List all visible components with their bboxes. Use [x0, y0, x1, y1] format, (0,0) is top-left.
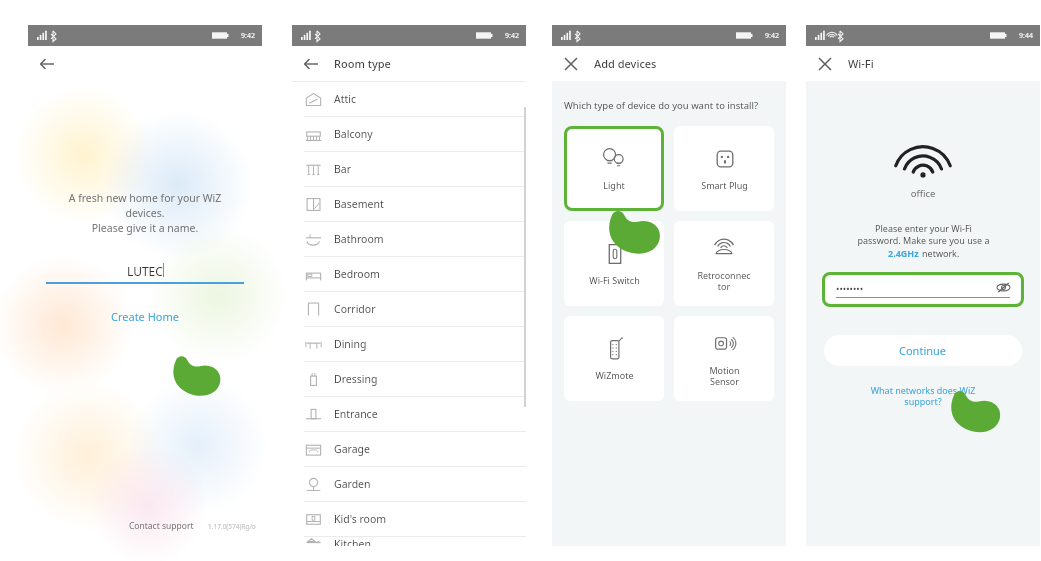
- button[interactable]: Create Home: [101, 306, 189, 327]
- staticText: Entrance: [334, 407, 378, 421]
- button[interactable]: Bathroom: [292, 222, 526, 256]
- staticText: Room type: [334, 56, 391, 71]
- staticText: Kid's room: [334, 512, 387, 526]
- button[interactable]: Light: [567, 129, 661, 208]
- staticText: Kitchen: [334, 537, 371, 546]
- staticText: LUTEC: [127, 263, 163, 279]
- button[interactable]: Kid's room: [292, 502, 526, 536]
- staticText: 9:44: [1019, 31, 1033, 41]
- staticText: Balcony: [334, 127, 373, 141]
- button[interactable]: Bar: [292, 152, 526, 186]
- staticText: Continue: [899, 343, 947, 358]
- button[interactable]: Bedroom: [292, 257, 526, 291]
- staticText: Wi-Fi: [848, 56, 874, 71]
- staticText: Dressing: [334, 372, 378, 386]
- staticText: 9:42: [241, 31, 255, 41]
- staticText: Please enter your Wi-Fi password. Make s…: [857, 222, 990, 247]
- staticText: network.: [922, 247, 960, 259]
- button[interactable]: Basement: [292, 187, 526, 221]
- staticText: Add devices: [594, 56, 657, 71]
- staticText: 1.17.0(574)Rg/o: [208, 522, 256, 531]
- staticText: A fresh new home for your WiZ devices. P…: [36, 191, 254, 235]
- staticText: Contact support: [129, 520, 194, 532]
- button[interactable]: Garage: [292, 432, 526, 466]
- button[interactable]: Smart Plug: [674, 126, 774, 211]
- button[interactable]: ••••••••: [836, 281, 1010, 298]
- button[interactable]: Corridor: [292, 292, 526, 326]
- button[interactable]: Close: [812, 51, 838, 77]
- button[interactable]: Kitchen: [292, 537, 526, 546]
- button[interactable]: Garden: [292, 467, 526, 501]
- staticText: Create Home: [111, 309, 179, 324]
- button[interactable]: Close: [558, 51, 584, 77]
- staticText: What networks does WiZ support?: [832, 384, 1014, 408]
- staticText: office: [806, 187, 1040, 200]
- button[interactable]: Dressing: [292, 362, 526, 396]
- staticText: Dining: [334, 337, 367, 351]
- button[interactable]: Back: [34, 51, 60, 77]
- staticText: 9:42: [765, 31, 779, 41]
- button[interactable]: Motion Sensor: [674, 316, 774, 401]
- button[interactable]: Balcony: [292, 117, 526, 151]
- staticText: Garden: [334, 477, 371, 491]
- staticText: Bar: [334, 162, 352, 176]
- button[interactable]: Back: [298, 51, 324, 77]
- staticText: Motion Sensor: [709, 364, 740, 387]
- staticText: Garage: [334, 442, 370, 456]
- button[interactable]: Retroconnec tor: [674, 221, 774, 306]
- other: Show password: [997, 281, 1010, 294]
- button[interactable]: Wi-Fi Switch: [564, 221, 664, 306]
- staticText: Corridor: [334, 302, 376, 316]
- staticText: Bedroom: [334, 267, 380, 281]
- button[interactable]: Attic: [292, 82, 526, 116]
- staticText: Basement: [334, 197, 384, 211]
- button[interactable]: Entrance: [292, 397, 526, 431]
- staticText: 9:42: [505, 31, 519, 41]
- staticText: Retroconnec tor: [697, 269, 751, 292]
- staticText: Wi-Fi Switch: [589, 274, 640, 286]
- staticText: Smart Plug: [701, 179, 748, 191]
- staticText: ••••••••: [836, 282, 864, 294]
- staticText: Light: [603, 179, 625, 191]
- staticText: WiZmote: [595, 369, 634, 381]
- staticText: Attic: [334, 92, 357, 106]
- staticText: Bathroom: [334, 232, 384, 246]
- button[interactable]: WiZmote: [564, 316, 664, 401]
- button[interactable]: Dining: [292, 327, 526, 361]
- staticText: Which type of device do you want to inst…: [564, 99, 759, 112]
- staticText: 2.4GHz: [888, 247, 922, 259]
- button[interactable]: Continue: [824, 335, 1022, 366]
- button[interactable]: What networks does WiZ support?: [832, 384, 1014, 408]
- button[interactable]: Contact support: [127, 518, 196, 534]
